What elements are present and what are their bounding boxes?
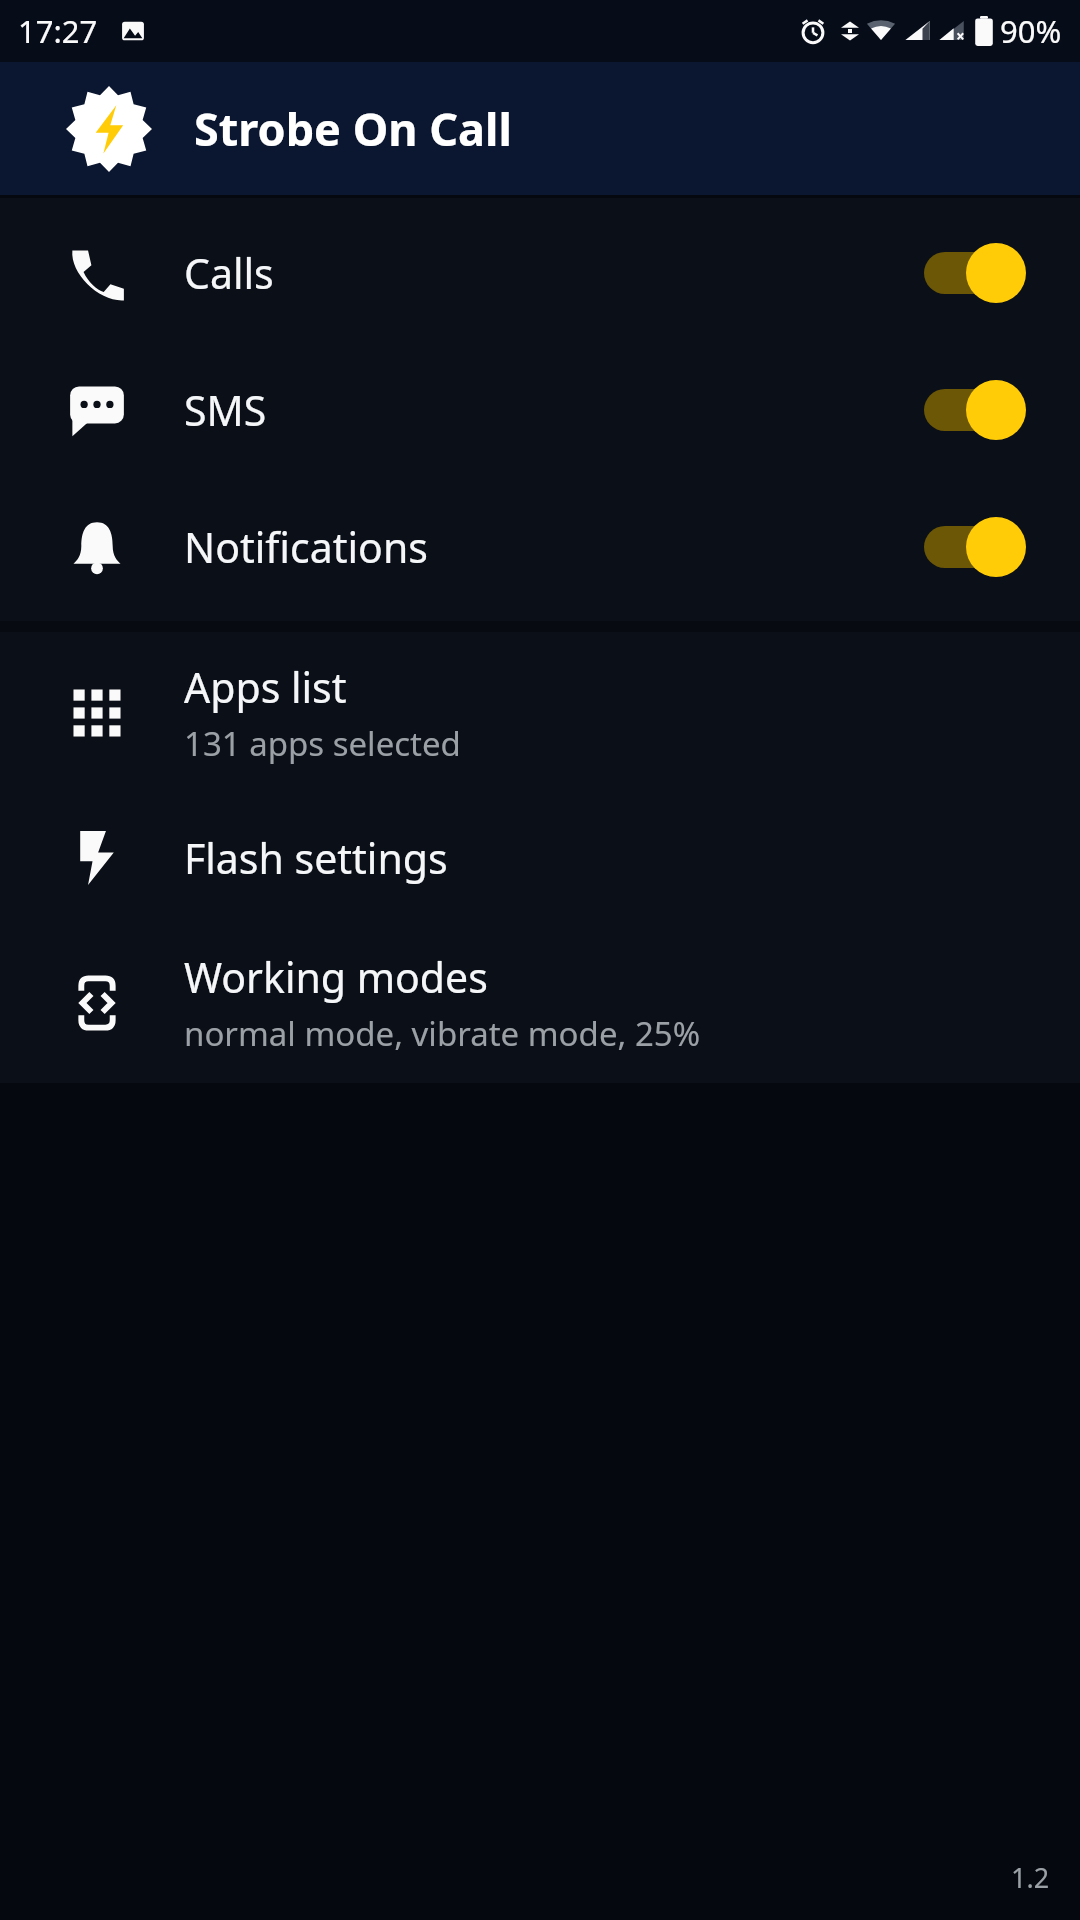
staticText: Apps list [184,659,347,715]
staticText: SMS [184,382,918,438]
other: Flash settings [69,830,125,886]
staticText: 17:27 [18,10,98,52]
staticText: Working modes [184,949,488,1005]
button[interactable]: Toggle [918,516,1028,578]
button[interactable]: Working modes [0,926,1080,1079]
staticText: Calls [184,245,918,301]
button[interactable]: Toggle [918,379,1028,441]
other: Notifications [69,519,125,575]
staticText: 1.2 [1011,1859,1050,1896]
other: Apps list [69,685,125,741]
staticText: Strobe On Call [194,98,512,159]
button[interactable]: Calls [0,204,1080,341]
button[interactable]: Flash settings [0,789,1080,926]
button[interactable]: Notifications [0,478,1080,615]
staticText: 131 apps selected [184,721,461,766]
other: Working modes [69,975,125,1031]
staticText: Notifications [184,519,918,575]
staticText: Flash settings [184,830,448,886]
staticText: normal mode, vibrate mode, 25% [184,1011,701,1056]
other: SMS [69,382,125,438]
button[interactable]: Apps list [0,636,1080,789]
button[interactable]: SMS [0,341,1080,478]
button[interactable]: Toggle [918,242,1028,304]
other: Calls [69,245,125,301]
staticText: 90% [1000,10,1062,52]
